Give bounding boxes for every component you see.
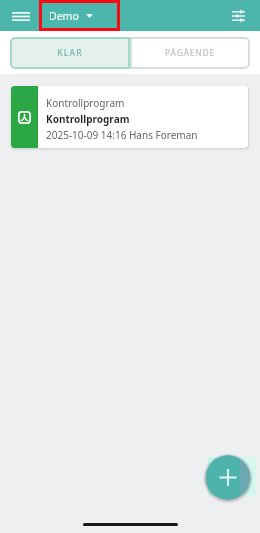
button[interactable]: KLAR (10, 37, 130, 69)
button[interactable]: Filter (224, 2, 252, 30)
staticText: Kontrollprogram (46, 96, 125, 110)
button[interactable]: Add (206, 455, 250, 499)
staticText: Kontrollprogram (46, 112, 130, 126)
button[interactable]: Kontrollprogram (11, 86, 248, 148)
button[interactable]: Demo (39, 0, 120, 31)
button[interactable]: PÅGÅENDE (130, 37, 250, 69)
button[interactable]: Menu (7, 2, 35, 30)
staticText: KLAR (57, 47, 83, 59)
staticText: Demo (49, 9, 79, 23)
staticText: 2025-10-09 14:16 Hans Foreman (46, 128, 198, 142)
staticText: PÅGÅENDE (165, 47, 215, 59)
